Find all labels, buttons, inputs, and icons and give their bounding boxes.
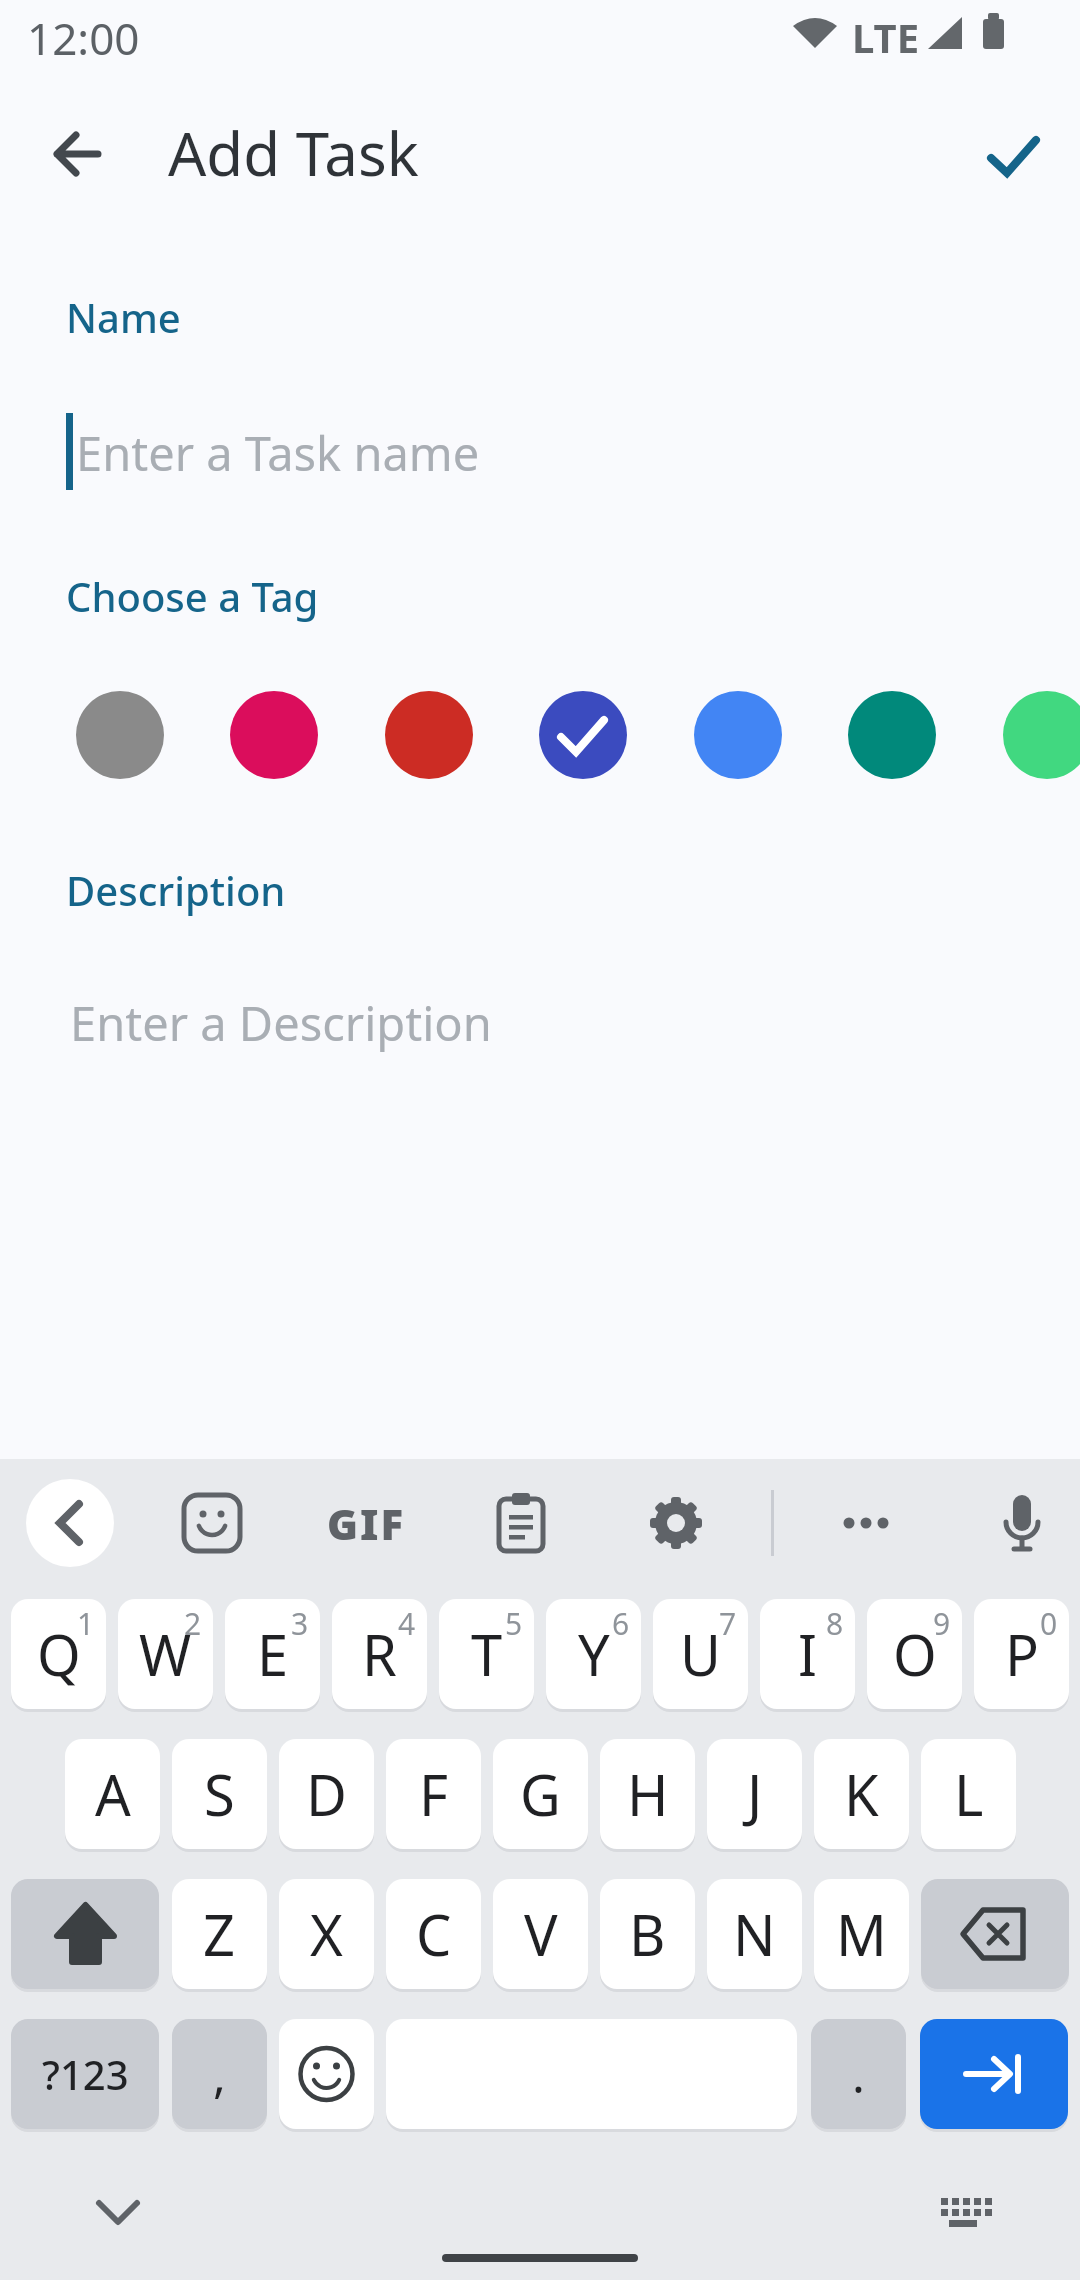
button[interactable] bbox=[653, 1599, 748, 1709]
button[interactable] bbox=[920, 2019, 1068, 2129]
staticText: V bbox=[524, 1896, 558, 1972]
staticText: D bbox=[306, 1756, 347, 1832]
button[interactable] bbox=[600, 1739, 695, 1849]
staticText: Q bbox=[37, 1616, 81, 1692]
staticText: Description bbox=[66, 863, 286, 917]
staticText: 2 bbox=[184, 1603, 202, 1643]
staticText: Choose a Tag bbox=[66, 569, 319, 623]
staticText: 3 bbox=[291, 1603, 309, 1643]
button[interactable] bbox=[921, 1879, 1069, 1989]
button[interactable] bbox=[386, 1879, 481, 1989]
staticText: L bbox=[954, 1756, 984, 1832]
button[interactable] bbox=[386, 1739, 481, 1849]
button[interactable] bbox=[78, 2172, 158, 2252]
staticText: Add Task bbox=[168, 112, 419, 194]
staticText: 5 bbox=[505, 1603, 523, 1643]
button[interactable] bbox=[489, 1491, 553, 1555]
button[interactable] bbox=[172, 1879, 267, 1989]
staticText: O bbox=[893, 1616, 937, 1692]
button[interactable] bbox=[922, 2172, 1002, 2252]
button[interactable] bbox=[760, 1599, 855, 1709]
staticText: 12:00 bbox=[27, 8, 140, 68]
button[interactable] bbox=[279, 1739, 374, 1849]
button[interactable] bbox=[921, 1739, 1016, 1849]
staticText: I bbox=[798, 1616, 817, 1692]
button[interactable] bbox=[707, 1739, 802, 1849]
staticText: G bbox=[520, 1756, 561, 1832]
button[interactable] bbox=[65, 1739, 160, 1849]
staticText: Z bbox=[203, 1896, 236, 1972]
button[interactable] bbox=[867, 1599, 962, 1709]
button[interactable] bbox=[814, 1879, 909, 1989]
staticText: 0 bbox=[1040, 1603, 1058, 1643]
button[interactable] bbox=[694, 691, 782, 779]
staticText: J bbox=[747, 1756, 763, 1832]
staticText: ?123 bbox=[42, 2047, 129, 2101]
button[interactable] bbox=[848, 691, 936, 779]
button[interactable] bbox=[546, 1599, 641, 1709]
staticText: 1 bbox=[77, 1603, 95, 1643]
staticText: 6 bbox=[612, 1603, 630, 1643]
staticText: . bbox=[852, 2042, 865, 2107]
button[interactable] bbox=[60, 975, 1020, 1075]
button[interactable]: GIF bbox=[320, 1491, 412, 1555]
button[interactable] bbox=[225, 1599, 320, 1709]
staticText: R bbox=[362, 1616, 397, 1692]
staticText: B bbox=[629, 1896, 666, 1972]
button[interactable] bbox=[60, 400, 1020, 500]
button[interactable] bbox=[830, 1491, 902, 1555]
button[interactable] bbox=[990, 1491, 1054, 1555]
button[interactable]: . bbox=[811, 2019, 906, 2129]
button[interactable] bbox=[814, 1739, 909, 1849]
button[interactable] bbox=[539, 691, 627, 779]
staticText: , bbox=[213, 2042, 226, 2107]
button[interactable] bbox=[172, 1739, 267, 1849]
button[interactable] bbox=[279, 2019, 374, 2129]
staticText: T bbox=[471, 1616, 503, 1692]
staticText: GIF bbox=[327, 1495, 406, 1552]
staticText: N bbox=[733, 1896, 776, 1972]
button[interactable] bbox=[600, 1879, 695, 1989]
button[interactable] bbox=[118, 1599, 213, 1709]
button[interactable] bbox=[439, 1599, 534, 1709]
staticText: Name bbox=[66, 290, 181, 344]
button[interactable] bbox=[1003, 691, 1080, 779]
staticText: C bbox=[416, 1896, 452, 1972]
staticText: P bbox=[1005, 1616, 1039, 1692]
button[interactable] bbox=[493, 1739, 588, 1849]
staticText: M bbox=[836, 1896, 887, 1972]
staticText: U bbox=[680, 1616, 721, 1692]
button[interactable] bbox=[11, 1599, 106, 1709]
button[interactable] bbox=[230, 691, 318, 779]
staticText: S bbox=[204, 1756, 235, 1832]
staticText: X bbox=[310, 1896, 343, 1972]
button[interactable] bbox=[975, 118, 1051, 194]
staticText: K bbox=[844, 1756, 879, 1832]
button[interactable]: , bbox=[172, 2019, 267, 2129]
button[interactable] bbox=[40, 118, 112, 190]
staticText: F bbox=[419, 1756, 449, 1832]
button[interactable] bbox=[974, 1599, 1069, 1709]
staticText: Y bbox=[578, 1616, 610, 1692]
staticText: 7 bbox=[719, 1603, 737, 1643]
button[interactable] bbox=[279, 1879, 374, 1989]
staticText: 4 bbox=[398, 1603, 416, 1643]
staticText: W bbox=[139, 1616, 192, 1692]
staticText: A bbox=[95, 1756, 131, 1832]
staticText: E bbox=[257, 1616, 289, 1692]
button[interactable] bbox=[707, 1879, 802, 1989]
staticText: Enter a Description bbox=[70, 991, 492, 1055]
staticText: LTE bbox=[852, 10, 920, 64]
staticText: 8 bbox=[826, 1603, 844, 1643]
staticText: 9 bbox=[933, 1603, 951, 1643]
button[interactable] bbox=[644, 1491, 708, 1555]
button[interactable] bbox=[26, 1479, 114, 1567]
button[interactable] bbox=[11, 1879, 159, 1989]
button[interactable] bbox=[332, 1599, 427, 1709]
button[interactable] bbox=[385, 691, 473, 779]
button[interactable] bbox=[180, 1491, 244, 1555]
button[interactable] bbox=[76, 691, 164, 779]
button[interactable] bbox=[493, 1879, 588, 1989]
button[interactable]: ?123 bbox=[11, 2019, 159, 2129]
